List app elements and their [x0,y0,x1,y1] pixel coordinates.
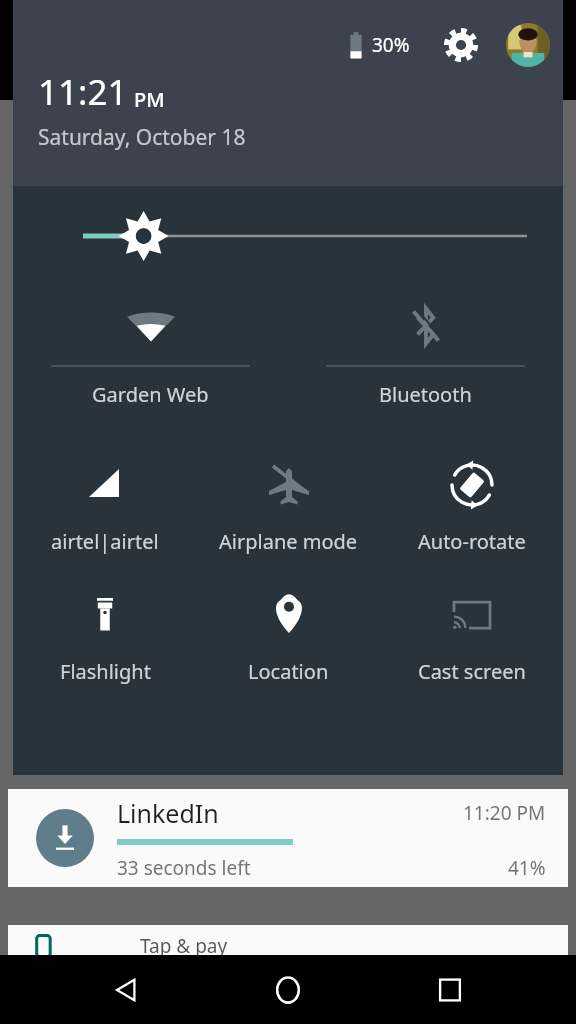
button[interactable]: Airplane mode [197,438,380,568]
staticText: LinkedIn [117,796,219,830]
button[interactable]: Settings [438,22,484,68]
button[interactable]: airtel|airtel [13,438,197,568]
button[interactable]: Tap & pay [8,925,568,985]
staticText: 11:21 [38,68,128,116]
staticText: Airplane mode [219,528,358,555]
button[interactable]: User profile [506,23,550,67]
staticText: 11:20 PM [463,800,546,826]
button[interactable]: Cast screen [380,568,563,698]
button[interactable]: Recent apps [414,955,486,1024]
button[interactable]: Brightness [13,206,563,266]
button[interactable]: Battery 30 percent [345,29,412,61]
button[interactable]: Garden Web [13,286,288,426]
staticText: Tap & pay [140,933,228,959]
staticText: Auto-rotate [418,528,526,555]
button[interactable]: Location [197,568,380,698]
staticText: PM [134,86,165,113]
button[interactable]: Auto-rotate [380,438,563,568]
staticText: 41% [508,855,546,881]
button[interactable]: Back [90,955,162,1024]
staticText: Bluetooth [379,381,472,408]
staticText: airtel|airtel [51,528,159,555]
button[interactable]: Flashlight [13,568,197,698]
staticText: Location [248,658,329,685]
staticText: 30% [372,32,410,58]
staticText: Cast screen [418,658,526,685]
button[interactable]: Bluetooth [288,286,563,426]
button[interactable]: Home [252,955,324,1024]
staticText: 33 seconds left [117,855,251,881]
staticText: Flashlight [60,658,151,685]
button[interactable]: LinkedIn [8,789,568,887]
staticText: Saturday, October 18 [38,123,246,152]
staticText: Garden Web [92,381,209,408]
